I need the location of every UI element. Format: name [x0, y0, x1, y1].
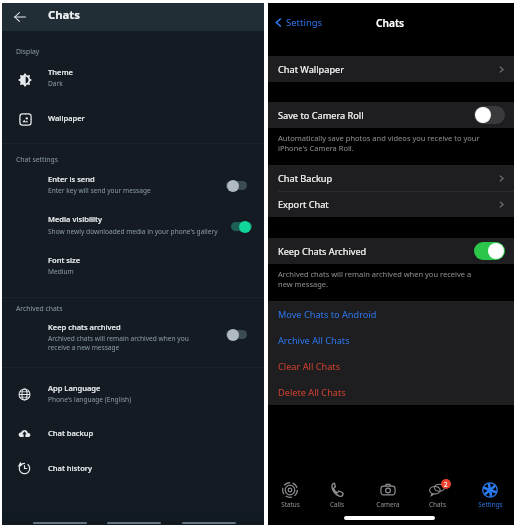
button[interactable]: Chat Backup [278, 165, 505, 191]
button[interactable]: Camera [369, 482, 407, 516]
staticText: Archived chats will remain archived when… [48, 334, 189, 352]
button[interactable] [2, 252, 264, 286]
staticText: Media visibility [48, 214, 102, 224]
button[interactable]: Settings [471, 482, 509, 516]
button[interactable] [2, 211, 264, 245]
staticText: Status [281, 500, 300, 509]
staticText: Medium [48, 267, 74, 276]
staticText: Chats [429, 500, 446, 509]
staticText: Enter key will send your message [48, 186, 151, 195]
button[interactable] [2, 59, 264, 99]
button[interactable]: Save to Camera Roll [278, 102, 505, 128]
staticText: 2 [444, 480, 448, 488]
button[interactable]: Back [8, 5, 32, 29]
button[interactable]: Toggle off [226, 179, 251, 192]
button[interactable]: Toggle off [226, 328, 251, 341]
staticText: Keep Chats Archived [278, 245, 474, 258]
button[interactable] [2, 103, 264, 137]
staticText: Theme [48, 67, 73, 77]
staticText: Enter is send [48, 174, 95, 184]
staticText: Chat history [48, 463, 93, 473]
button[interactable] [2, 453, 264, 487]
button[interactable]: Recents [32, 515, 88, 525]
staticText: App Language [48, 383, 101, 393]
staticText: Calls [330, 500, 344, 509]
button[interactable]: Settings [274, 16, 323, 29]
staticText: Chats [376, 16, 405, 30]
button[interactable] [2, 171, 264, 205]
button[interactable]: Keep Chats Archived [278, 238, 505, 264]
staticText: Export Chat [278, 198, 498, 211]
button[interactable]: Status [271, 482, 309, 516]
staticText: Archive All Chats [278, 334, 350, 347]
staticText: Display [16, 47, 40, 56]
staticText: Archived chats will remain archived when… [278, 269, 472, 289]
staticText: Wallpaper [48, 113, 85, 123]
staticText: Move Chats to Android [278, 308, 377, 321]
staticText: Chat Backup [278, 172, 498, 185]
staticText: Show newly downloaded media in your phon… [48, 227, 218, 236]
button[interactable]: 2 [418, 482, 456, 516]
staticText: Settings [286, 16, 323, 29]
staticText: Chat Wallpaper [278, 63, 498, 76]
button[interactable] [2, 418, 264, 452]
staticText: Camera [376, 500, 400, 509]
staticText: Chat backup [48, 428, 94, 438]
button[interactable]: Toggle on [226, 220, 251, 233]
staticText: Delete All Chats [278, 386, 346, 399]
staticText: Archived chats [16, 304, 63, 313]
button[interactable]: Back [181, 515, 237, 525]
button[interactable]: Export Chat [278, 191, 505, 217]
staticText: Chats [48, 7, 80, 22]
button[interactable]: Move Chats to Android [278, 301, 514, 327]
button[interactable] [2, 319, 264, 361]
button[interactable]: Home [106, 515, 162, 525]
staticText: Save to Camera Roll [278, 109, 474, 122]
button[interactable]: Archive All Chats [278, 327, 514, 353]
staticText: Clear All Chats [278, 360, 341, 373]
button[interactable]: Chat Wallpaper [278, 56, 505, 82]
staticText: Settings [478, 500, 503, 509]
staticText: Keep chats archived [48, 322, 121, 332]
staticText: Font size [48, 255, 81, 265]
staticText: Automatically save photos and videos you… [278, 133, 480, 153]
button[interactable]: Clear All Chats [278, 353, 514, 379]
staticText: Dark [48, 79, 63, 88]
staticText: Phone's language (English) [48, 395, 132, 404]
button[interactable]: Calls [318, 482, 356, 516]
button[interactable] [2, 375, 264, 415]
staticText: Chat settings [16, 155, 58, 164]
button[interactable]: Delete All Chats [278, 379, 514, 405]
